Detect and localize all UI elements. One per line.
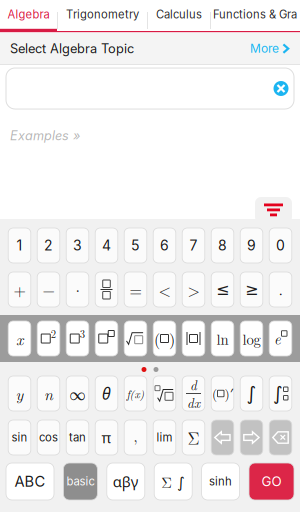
button[interactable]: [153, 376, 176, 411]
staticText: <: [158, 278, 170, 301]
staticText: Σ ∫: [161, 471, 185, 492]
button[interactable]: αβγ: [107, 463, 145, 500]
button[interactable]: sinh: [202, 463, 240, 500]
staticText: (: [212, 384, 217, 403]
button[interactable]: (: [153, 321, 176, 356]
staticText: GO: [261, 473, 281, 489]
button[interactable]: sin: [8, 420, 31, 455]
button[interactable]: Algebra: [0, 0, 57, 29]
button[interactable]: ln: [211, 321, 234, 356]
button[interactable]: y: [8, 376, 31, 411]
staticText: ·: [71, 278, 83, 301]
staticText: 6: [160, 237, 169, 254]
button[interactable]: Examples »: [10, 126, 80, 145]
button[interactable]: =: [124, 272, 147, 307]
staticText: sin: [11, 431, 27, 444]
staticText: θ: [102, 383, 111, 404]
button[interactable]: [95, 272, 118, 307]
button[interactable]: ≤: [211, 272, 234, 307]
staticText: ∫: [246, 383, 256, 404]
staticText: f(x): [126, 385, 144, 401]
button[interactable]: Calculus: [148, 0, 210, 29]
button[interactable]: ≥: [240, 272, 263, 307]
button[interactable]: [182, 321, 205, 356]
staticText: >: [187, 278, 199, 301]
staticText: 2: [44, 237, 53, 254]
button[interactable]: n: [37, 376, 60, 411]
staticText: ≤: [216, 280, 229, 299]
button[interactable]: More: [250, 41, 290, 56]
button[interactable]: 3: [66, 321, 89, 356]
button[interactable]: 3: [66, 228, 89, 263]
button[interactable]: Keyboard options: [255, 197, 292, 223]
button[interactable]: 1: [8, 228, 31, 263]
button[interactable]: π: [95, 420, 118, 455]
staticText: e: [274, 328, 281, 349]
staticText: tan: [69, 431, 86, 444]
button[interactable]: <: [153, 272, 176, 307]
button[interactable]: 7: [182, 228, 205, 263]
button[interactable]: Σ: [182, 420, 205, 455]
staticText: ∞: [69, 382, 85, 405]
button[interactable]: lim: [153, 420, 176, 455]
button[interactable]: θ: [95, 376, 118, 411]
button[interactable]: 8: [211, 228, 234, 263]
button[interactable]: 9: [240, 228, 263, 263]
staticText: ≥: [245, 280, 258, 299]
staticText: More: [250, 41, 279, 56]
button[interactable]: ,: [124, 420, 147, 455]
button[interactable]: x: [8, 321, 31, 356]
button[interactable]: 5: [124, 228, 147, 263]
button[interactable]: −: [37, 272, 60, 307]
staticText: dx: [187, 393, 200, 412]
button[interactable]: [240, 420, 263, 455]
staticText: 7: [189, 237, 197, 254]
button[interactable]: [269, 420, 292, 455]
button[interactable]: .: [269, 272, 292, 307]
button[interactable]: (: [211, 376, 234, 411]
staticText: 3: [80, 326, 85, 341]
button[interactable]: 6: [153, 228, 176, 263]
staticText: 4: [102, 237, 111, 254]
staticText: Calculus: [156, 8, 202, 21]
staticText: ABC: [14, 473, 45, 490]
button[interactable]: d: [182, 376, 205, 411]
button[interactable]: 0: [269, 228, 292, 263]
button[interactable]: Clear: [269, 76, 293, 100]
button[interactable]: f(x): [124, 376, 147, 411]
button[interactable]: e: [269, 321, 292, 356]
button[interactable]: +: [8, 272, 31, 307]
button[interactable]: tan: [66, 420, 89, 455]
button[interactable]: [95, 321, 118, 356]
button[interactable]: 4: [95, 228, 118, 263]
staticText: basic: [66, 475, 94, 488]
button[interactable]: ∫: [269, 376, 292, 411]
staticText: sinh: [209, 475, 232, 488]
staticText: Select Algebra Topic: [10, 41, 134, 56]
button[interactable]: GO: [249, 463, 294, 500]
staticText: x: [16, 327, 23, 350]
staticText: ∫: [273, 383, 283, 404]
button[interactable]: ∞: [66, 376, 89, 411]
button[interactable]: [211, 420, 234, 455]
button[interactable]: ∫: [240, 376, 263, 411]
button[interactable]: Trigonometry: [58, 0, 147, 29]
button[interactable]: 2: [37, 228, 60, 263]
button[interactable]: ·: [66, 272, 89, 307]
button[interactable]: >: [182, 272, 205, 307]
button[interactable]: basic: [63, 463, 97, 500]
staticText: +: [13, 278, 25, 301]
button[interactable]: ABC: [6, 463, 54, 500]
button[interactable]: cos: [37, 420, 60, 455]
button[interactable]: Functions & Gra: [211, 0, 299, 29]
button[interactable]: log: [240, 321, 263, 356]
staticText: .: [278, 277, 282, 300]
button[interactable]: [124, 321, 147, 356]
button[interactable]: 2: [37, 321, 60, 356]
staticText: Trigonometry: [66, 8, 139, 21]
staticText: log: [242, 328, 260, 349]
staticText: −: [42, 278, 54, 301]
button[interactable]: Σ ∫: [154, 463, 192, 500]
staticText: y: [15, 382, 23, 405]
staticText: Algebra: [7, 8, 49, 21]
